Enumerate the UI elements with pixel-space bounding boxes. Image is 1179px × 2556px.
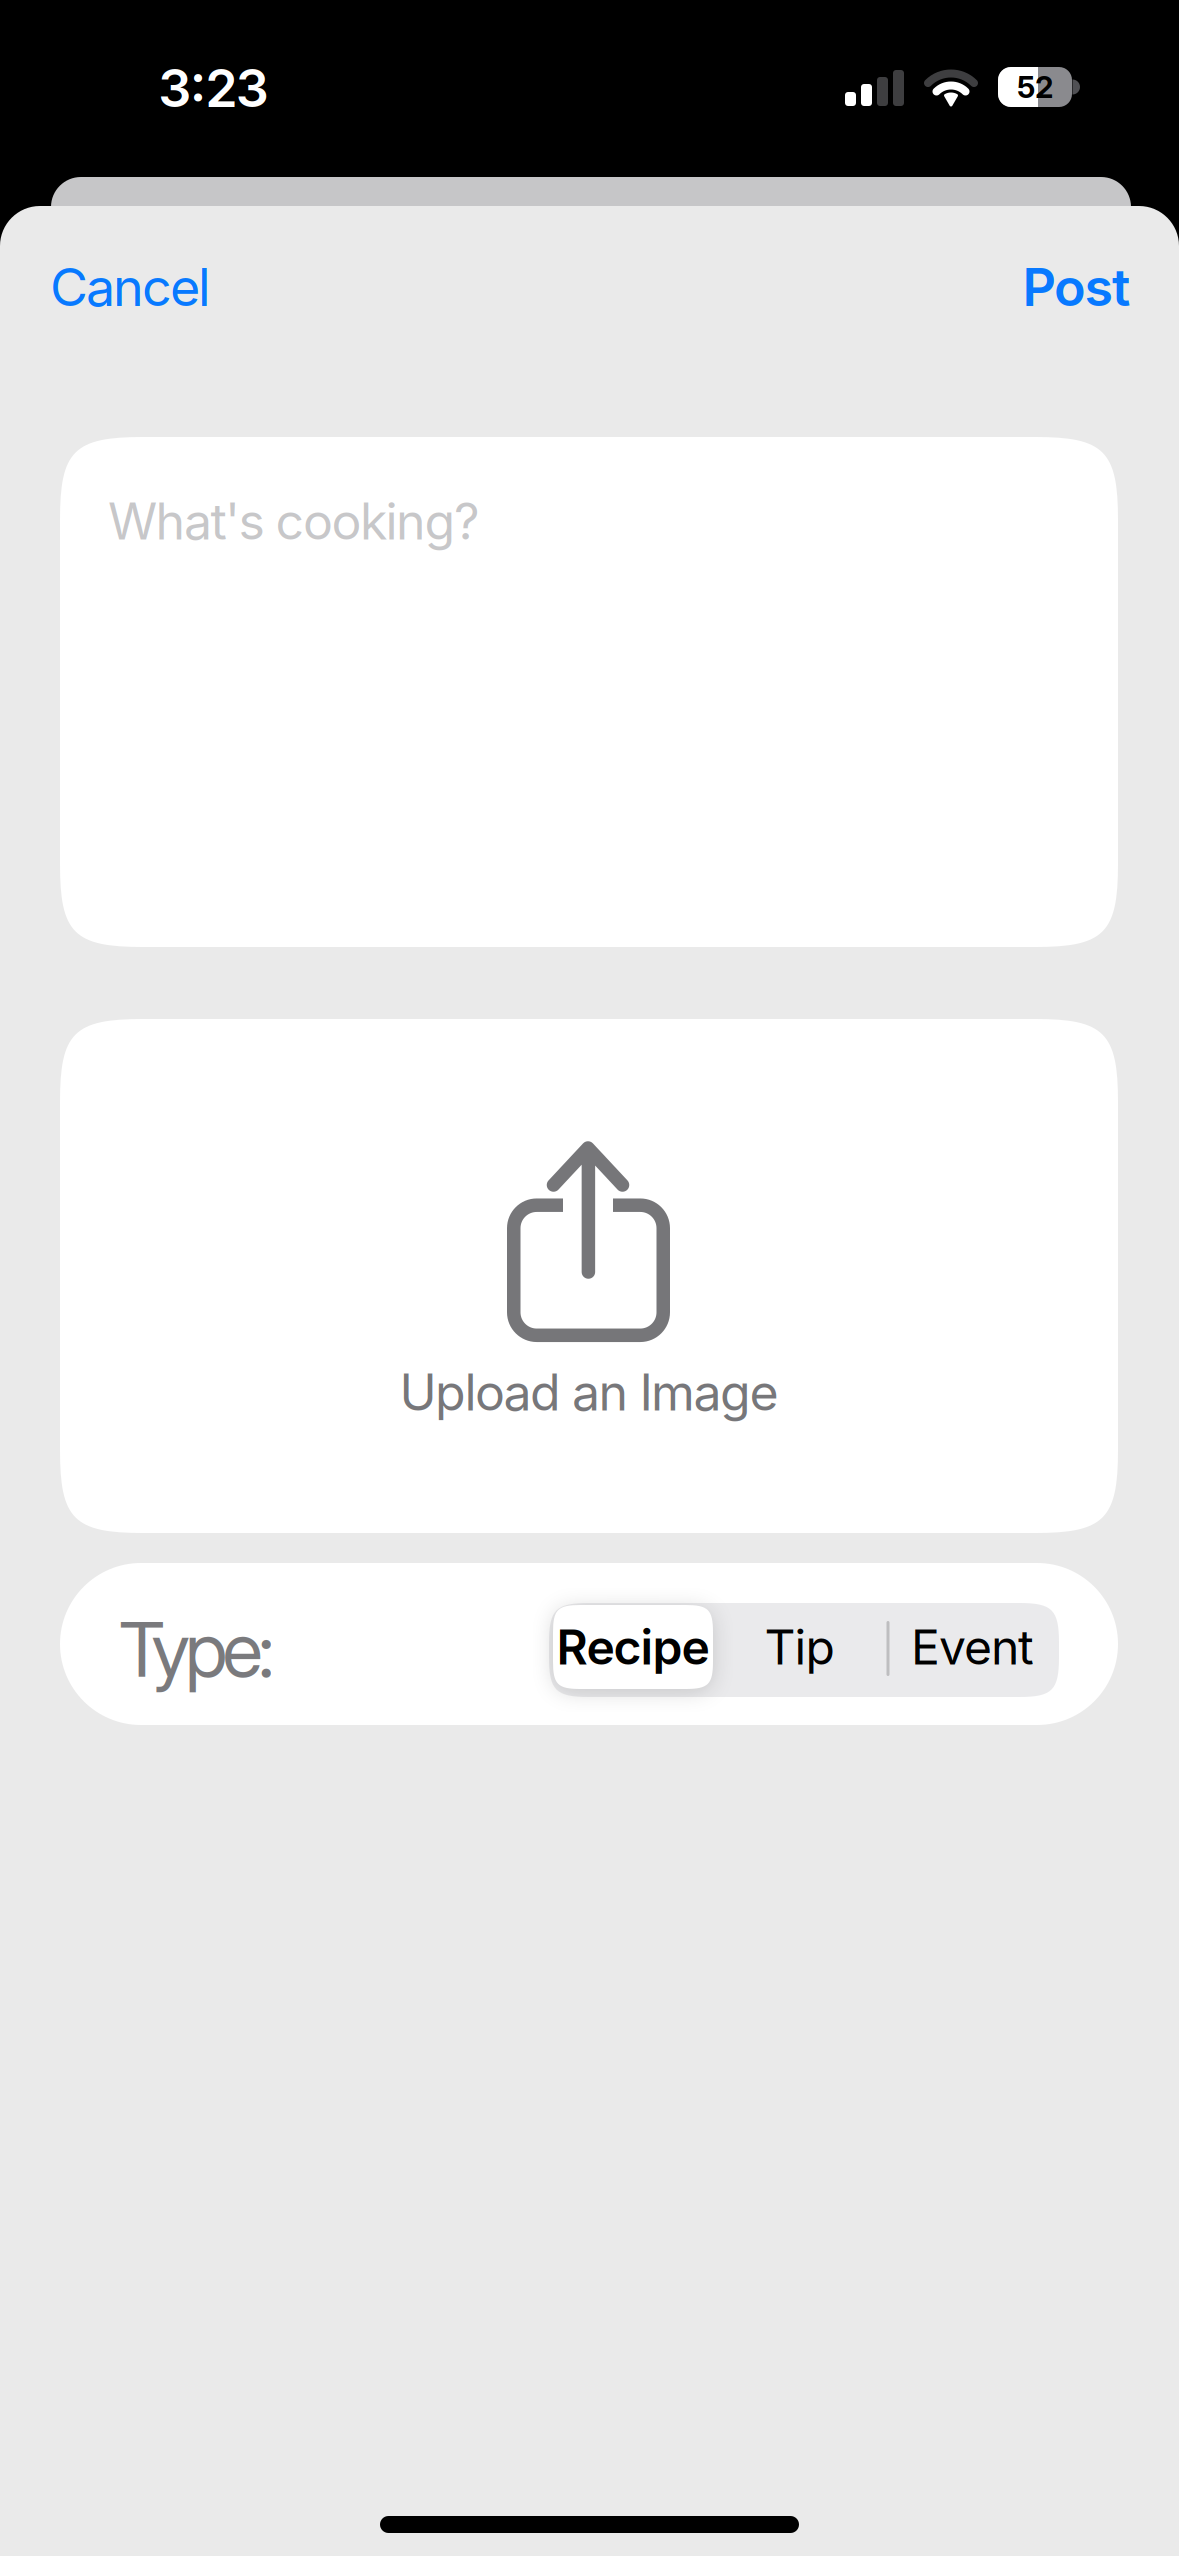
staticText: 52 <box>1017 69 1053 105</box>
button[interactable]: Cancel <box>50 255 211 319</box>
staticText: What's cooking? <box>108 491 480 551</box>
staticText: Post <box>1022 255 1130 318</box>
staticText: Tip <box>764 1618 834 1676</box>
staticText: Event <box>911 1618 1034 1676</box>
button[interactable]: Event <box>886 1605 1059 1689</box>
button[interactable]: What's cooking? <box>60 437 1118 947</box>
button[interactable]: Tip <box>713 1605 886 1689</box>
staticText: Cancel <box>50 255 211 318</box>
staticText: Type: <box>119 1604 274 1695</box>
staticText: Recipe <box>556 1618 709 1676</box>
staticText: Upload an Image <box>399 1362 778 1422</box>
button[interactable]: Recipe <box>553 1605 713 1689</box>
staticText: 3:23 <box>158 56 269 119</box>
button[interactable]: Post <box>910 255 1130 319</box>
button[interactable]: Upload an Image <box>60 1019 1118 1533</box>
